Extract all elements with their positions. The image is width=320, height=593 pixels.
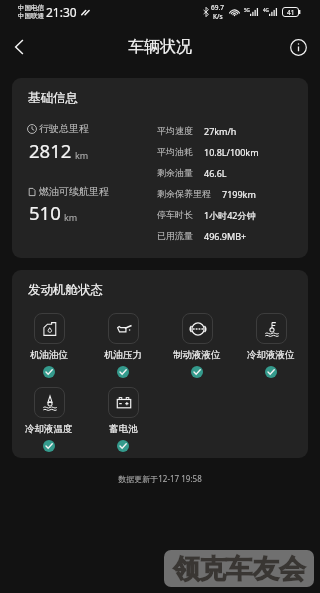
staticText: 10.8L/100km bbox=[204, 146, 259, 158]
button[interactable]: 冷却液液位 bbox=[234, 313, 308, 378]
staticText: 5G bbox=[244, 7, 250, 13]
button[interactable]: 机油油位 bbox=[12, 313, 86, 378]
staticText: km bbox=[64, 211, 78, 223]
staticText: 制动液液位 bbox=[173, 349, 221, 361]
button[interactable]: Back bbox=[0, 24, 38, 70]
staticText: 已用流量 bbox=[157, 230, 193, 241]
staticText: 剩余油量 bbox=[157, 167, 193, 178]
staticText: 数据更新于12-17 19:58 bbox=[0, 473, 320, 484]
staticText: 7199km bbox=[222, 188, 256, 200]
staticText: K/s bbox=[213, 12, 223, 21]
staticText: 中国联通 bbox=[18, 12, 44, 20]
staticText: 46.6L bbox=[204, 167, 227, 179]
staticText: 发动机舱状态 bbox=[28, 282, 103, 298]
staticText: 机油压力 bbox=[104, 349, 142, 361]
staticText: 平均速度 bbox=[157, 125, 193, 136]
staticText: 41 bbox=[287, 8, 295, 17]
staticText: 中国电信 bbox=[18, 4, 44, 12]
staticText: 1小时42分钟 bbox=[204, 209, 256, 221]
staticText: 27km/h bbox=[204, 125, 237, 137]
staticText: 车辆状况 bbox=[128, 37, 192, 57]
staticText: 4G bbox=[263, 7, 269, 13]
staticText: 基础信息 bbox=[28, 90, 78, 106]
staticText: 平均油耗 bbox=[157, 146, 193, 157]
staticText: 496.9MB+ bbox=[204, 230, 247, 242]
staticText: 69.7 bbox=[211, 3, 224, 12]
staticText: 冷却液温度 bbox=[25, 423, 73, 435]
staticText: 领克车友会 bbox=[173, 552, 306, 585]
staticText: 行驶总里程 bbox=[39, 122, 89, 135]
staticText: 2812 bbox=[29, 138, 72, 163]
staticText: 机油油位 bbox=[30, 349, 68, 361]
staticText: 510 bbox=[29, 200, 61, 225]
staticText: 21:30 bbox=[46, 4, 77, 20]
button[interactable]: Info bbox=[276, 24, 320, 70]
staticText: 剩余保养里程 bbox=[157, 188, 211, 199]
staticText: km bbox=[75, 149, 89, 161]
button[interactable]: 冷却液温度 bbox=[12, 387, 86, 452]
staticText: 停车时长 bbox=[157, 209, 193, 220]
staticText: 燃油可续航里程 bbox=[39, 185, 109, 198]
button[interactable]: 机油压力 bbox=[86, 313, 160, 378]
staticText: 蓄电池 bbox=[109, 423, 138, 435]
staticText: 冷却液液位 bbox=[247, 349, 295, 361]
button[interactable]: 蓄电池 bbox=[86, 387, 160, 452]
button[interactable]: 制动液液位 bbox=[160, 313, 234, 378]
